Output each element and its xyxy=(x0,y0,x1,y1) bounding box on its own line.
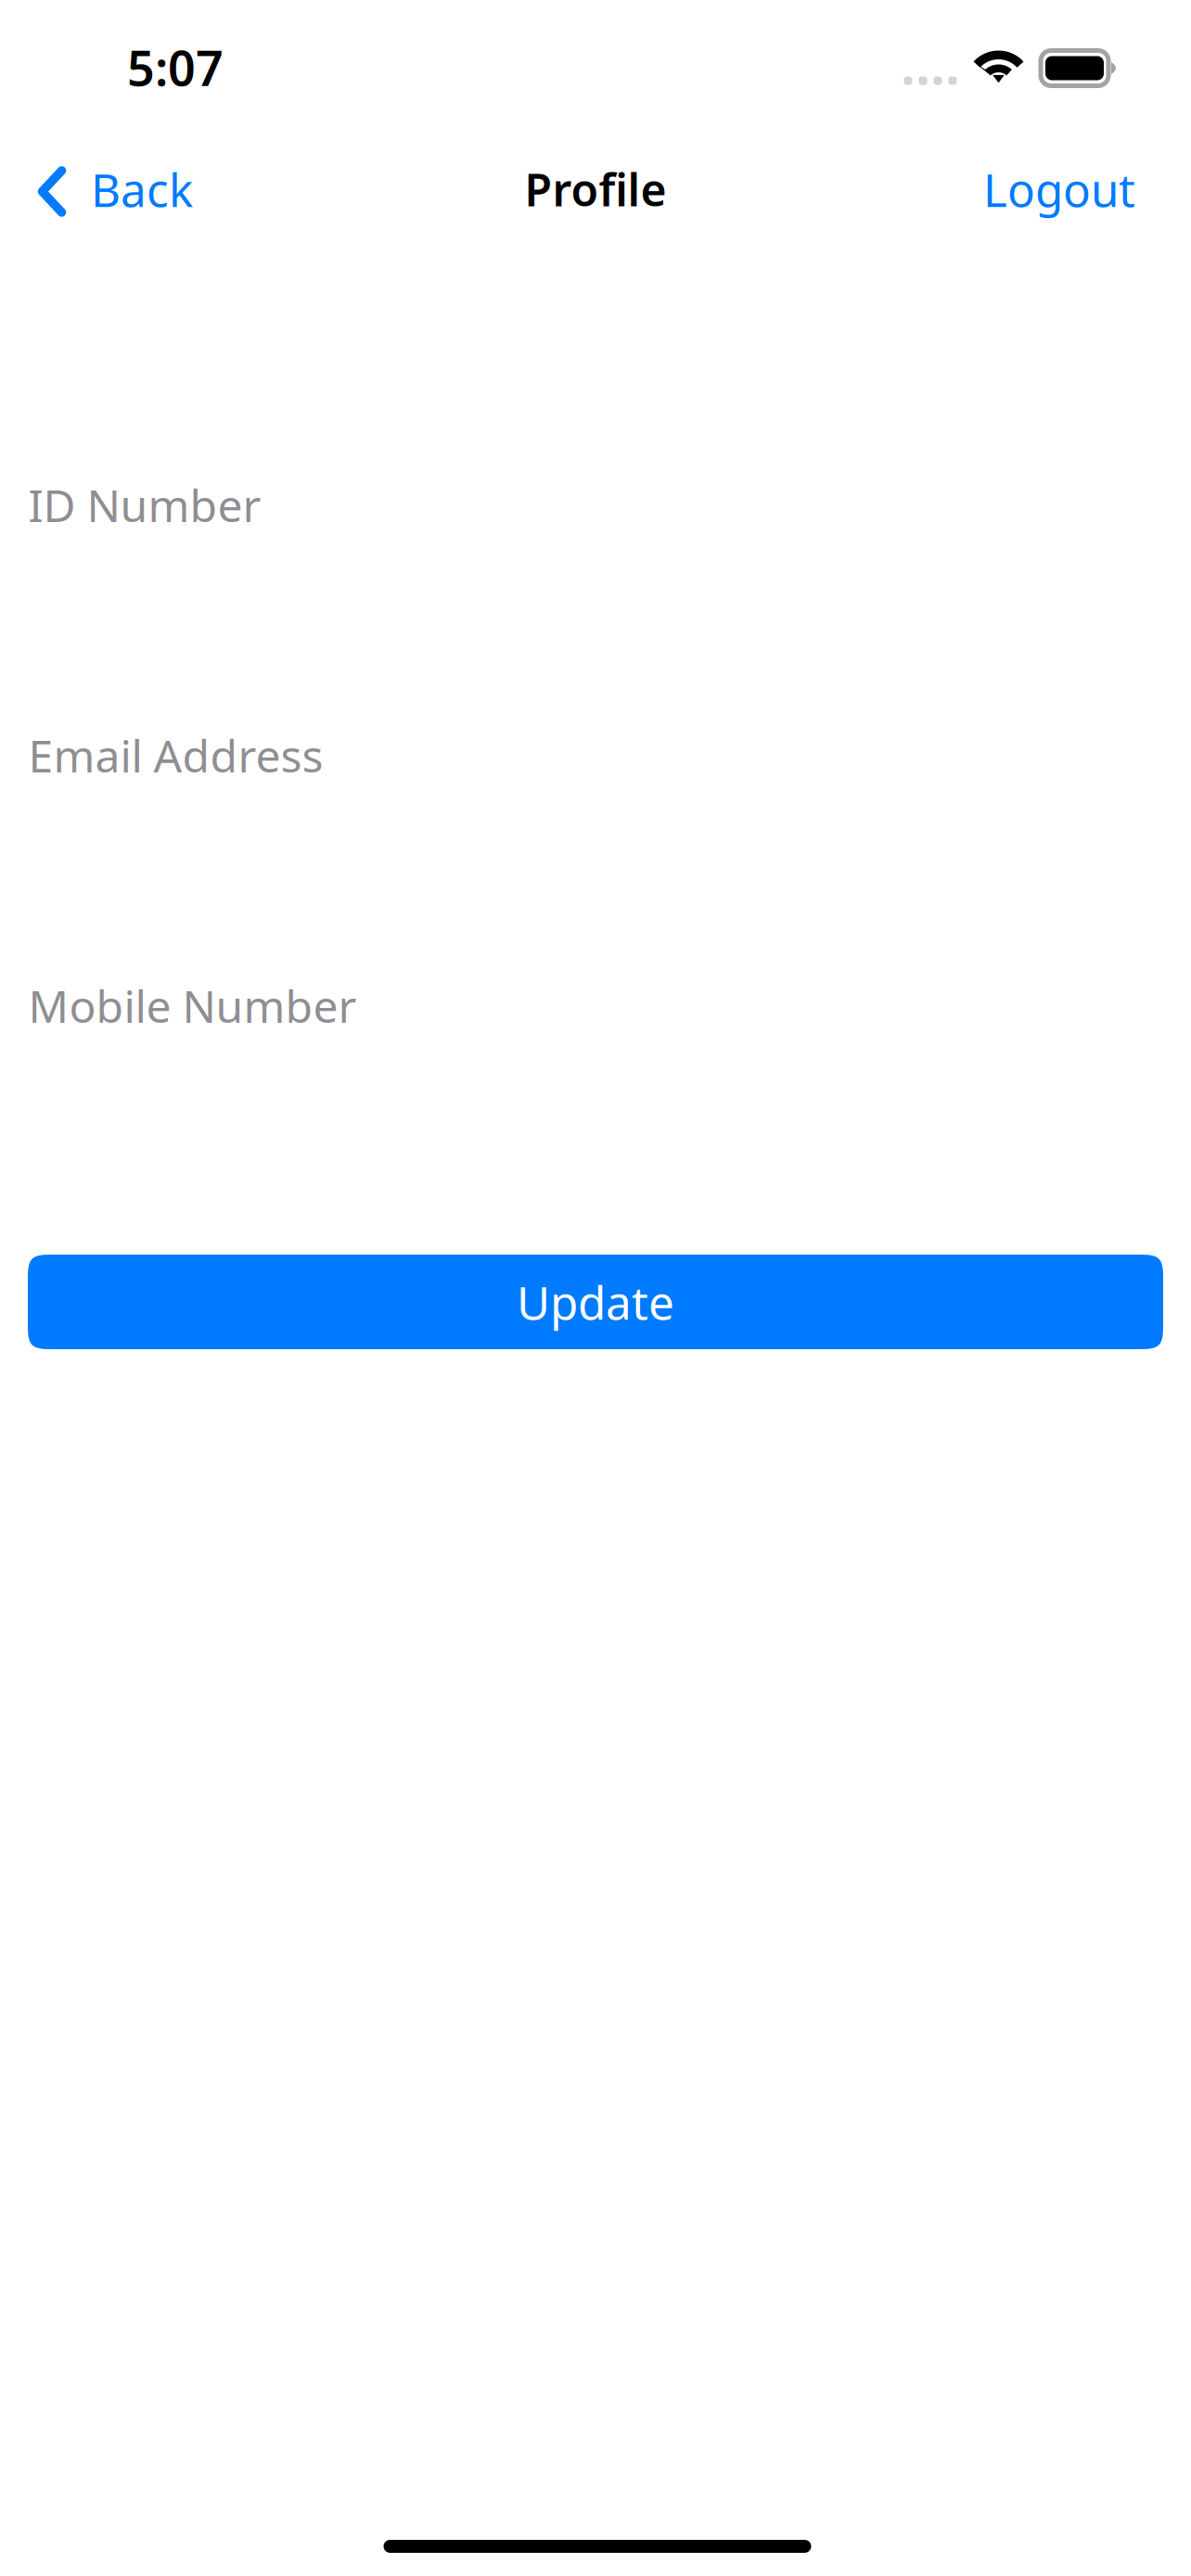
button[interactable]: Back xyxy=(0,128,215,250)
staticText: 5:07 xyxy=(127,35,224,99)
staticText: Mobile Number xyxy=(28,976,357,1035)
textField[interactable]: ID Number xyxy=(28,481,1175,529)
staticText: Update xyxy=(517,1271,674,1332)
textField[interactable]: Mobile Number xyxy=(28,982,1175,1029)
staticText: Profile xyxy=(525,160,666,219)
staticText: ID Number xyxy=(28,475,261,534)
staticText: Email Address xyxy=(28,726,323,785)
staticText: Back xyxy=(91,159,193,219)
staticText: Logout xyxy=(983,159,1135,219)
textField[interactable]: Email Address xyxy=(28,732,1175,779)
button[interactable]: Logout xyxy=(961,128,1191,250)
button[interactable]: Update xyxy=(28,1255,1163,1349)
